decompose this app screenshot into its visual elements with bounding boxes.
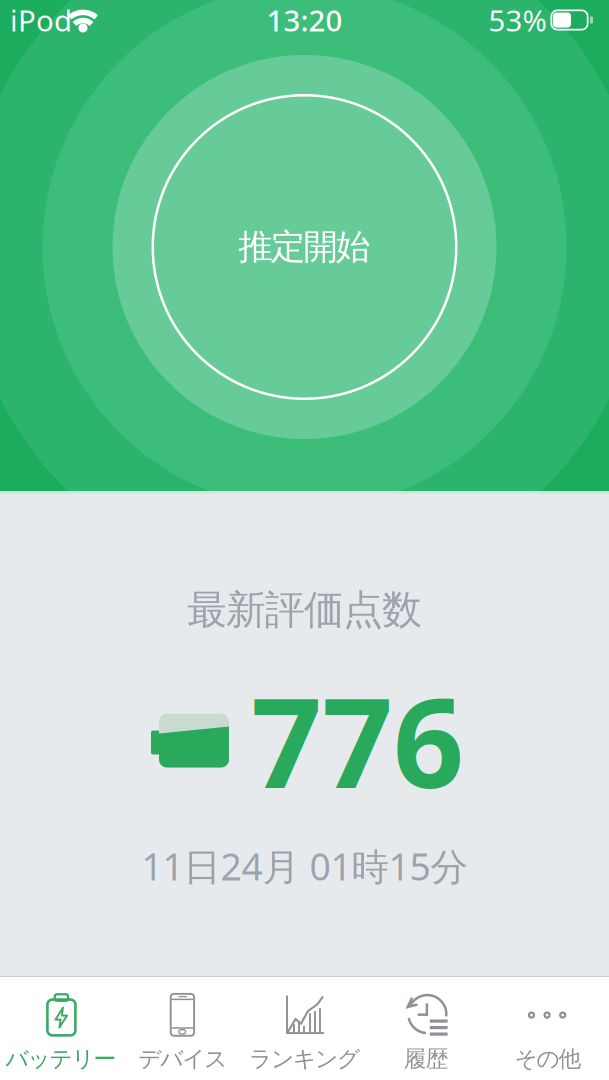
button[interactable]: ランキング: [244, 977, 365, 1080]
button[interactable]: バッテリー: [0, 977, 122, 1080]
staticText: 最新評価点数: [187, 585, 422, 634]
staticText: 履歴: [404, 1045, 449, 1073]
staticText: 11日24月 01時15分: [141, 841, 467, 891]
staticText: 推定開始: [238, 226, 371, 268]
staticText: 53%: [488, 0, 546, 39]
staticText: iPod: [10, 0, 72, 39]
button[interactable]: デバイス: [122, 977, 244, 1080]
staticText: デバイス: [138, 1045, 227, 1073]
staticText: 776: [251, 658, 464, 822]
button[interactable]: その他: [487, 977, 609, 1080]
staticText: バッテリー: [5, 1045, 116, 1073]
button[interactable]: 履歴: [365, 977, 487, 1080]
button[interactable]: 推定開始: [151, 94, 457, 400]
staticText: ランキング: [249, 1045, 360, 1073]
staticText: その他: [515, 1045, 582, 1073]
staticText: 13:20: [266, 0, 342, 39]
